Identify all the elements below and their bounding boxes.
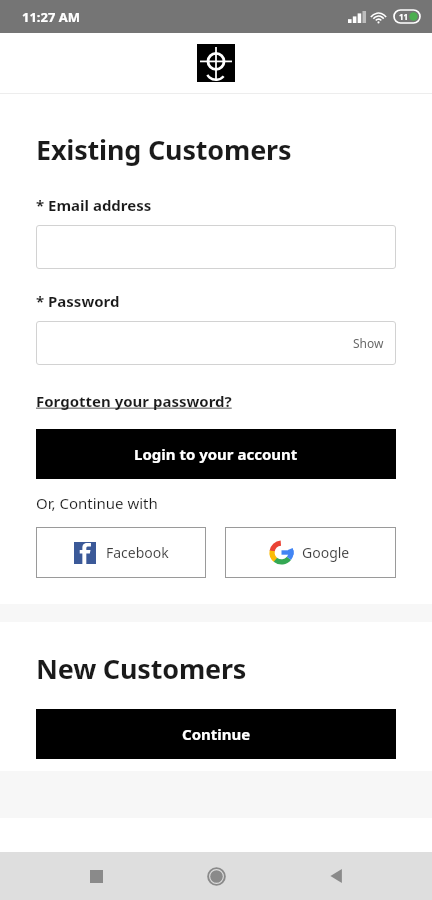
button[interactable]: Google xyxy=(225,527,396,578)
staticText: Forgotten your password? xyxy=(36,391,232,411)
button[interactable]: Show xyxy=(353,335,384,351)
staticText: 11:27 AM xyxy=(22,8,81,26)
button[interactable]: Home xyxy=(192,852,240,900)
button[interactable]: Home logo xyxy=(197,44,235,82)
button[interactable]: Recent apps xyxy=(72,852,120,900)
button[interactable]: Continue xyxy=(36,709,396,759)
staticText: Google xyxy=(302,543,350,562)
staticText: * Email address xyxy=(36,195,152,215)
staticText: Existing Customers xyxy=(36,131,292,168)
staticText: 11 xyxy=(399,11,409,22)
button[interactable]: Login to your account xyxy=(36,429,396,479)
staticText: Facebook xyxy=(106,543,169,562)
staticText: New Customers xyxy=(36,650,247,687)
staticText: * Password xyxy=(36,291,120,311)
button[interactable]: Facebook xyxy=(36,527,206,578)
button[interactable]: Forgotten your password? xyxy=(36,391,232,411)
button[interactable]: Email address xyxy=(36,225,396,269)
button[interactable]: Back xyxy=(312,852,360,900)
staticText: Show xyxy=(353,335,384,351)
staticText: Or, Continue with xyxy=(36,493,158,513)
button[interactable]: Password xyxy=(36,321,396,365)
staticText: Login to your account xyxy=(134,444,298,464)
staticText: Continue xyxy=(182,724,251,744)
